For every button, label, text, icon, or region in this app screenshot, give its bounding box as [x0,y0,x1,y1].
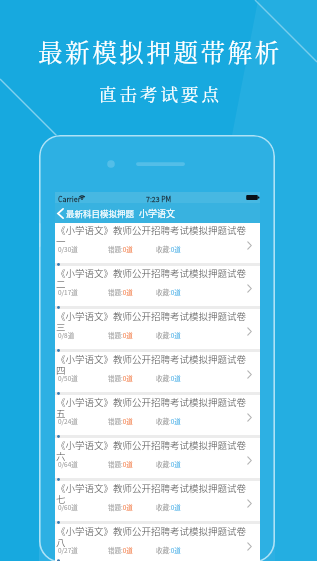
staticText: 错题:0道 [108,373,133,382]
button[interactable]: 《小学语文》教师公开招聘考试模拟押题试卷 [55,352,260,395]
staticText: Carrier [58,194,81,204]
staticText: 0/50道 [58,373,78,382]
staticText: 《小学语文》教师公开招聘考试模拟押题试卷 [56,438,247,452]
staticText: 一 [56,234,66,248]
button[interactable]: 《小学语文》教师公开招聘考试模拟押题试卷 [55,309,260,352]
staticText: 0/30道 [58,244,78,253]
staticText: 《小学语文》教师公开招聘考试模拟押题试卷 [56,395,247,409]
staticText: 《小学语文》教师公开招聘考试模拟押题试卷 [56,309,247,323]
button[interactable]: 最新科目模拟押题 [55,203,137,223]
staticText: 错题:0道 [108,459,133,468]
staticText: 《小学语文》教师公开招聘考试模拟押题试卷 [56,223,247,237]
staticText: 五 [56,406,66,420]
staticText: 7:23 PM [146,194,172,204]
staticText: 错题:0道 [108,502,133,511]
staticText: 收藏:0道 [156,373,181,382]
button[interactable]: 《小学语文》教师公开招聘考试模拟押题试卷 [55,395,260,438]
staticText: 收藏:0道 [156,545,181,554]
button[interactable]: 《小学语文》教师公开招聘考试模拟押题试卷 [55,266,260,309]
staticText: 《小学语文》教师公开招聘考试模拟押题试卷 [56,352,247,366]
button[interactable]: 《小学语文》教师公开招聘考试模拟押题试卷 [55,438,260,481]
staticText: 《小学语文》教师公开招聘考试模拟押题试卷 [56,266,247,280]
button[interactable]: 《小学语文》教师公开招聘考试模拟押题试卷 [55,481,260,524]
button[interactable]: 《小学语文》教师公开招聘考试模拟押题试卷 [55,524,260,561]
staticText: 错题:0道 [108,330,133,339]
staticText: 收藏:0道 [156,459,181,468]
staticText: 错题:0道 [108,545,133,554]
staticText: 收藏:0道 [156,244,181,253]
staticText: 收藏:0道 [156,330,181,339]
staticText: 收藏:0道 [156,287,181,296]
staticText: 0/60道 [58,502,78,511]
staticText: 0/27道 [58,545,78,554]
staticText: 0/24道 [58,416,78,425]
staticText: 《小学语文》教师公开招聘考试模拟押题试卷 [56,481,247,495]
staticText: 0/17道 [58,287,78,296]
staticText: 错题:0道 [108,287,133,296]
staticText: 四 [56,363,66,377]
staticText: 错题:0道 [108,244,133,253]
staticText: 0/64道 [58,459,78,468]
staticText: 二 [56,277,66,291]
staticText: 三 [56,320,66,334]
staticText: 八 [56,535,66,549]
staticText: 最新模拟押题带解析 [38,34,282,69]
button[interactable]: 《小学语文》教师公开招聘考试模拟押题试卷 [55,223,260,266]
staticText: 六 [56,449,66,463]
staticText: 错题:0道 [108,416,133,425]
staticText: 0/8道 [58,330,75,339]
staticText: 直击考试要点 [99,81,222,106]
staticText: 《小学语文》教师公开招聘考试模拟押题试卷 [56,524,247,538]
staticText: 小学语文 [139,207,176,220]
staticText: 七 [56,492,66,506]
staticText: 最新科目模拟押题 [66,207,135,219]
staticText: 收藏:0道 [156,502,181,511]
staticText: 收藏:0道 [156,416,181,425]
